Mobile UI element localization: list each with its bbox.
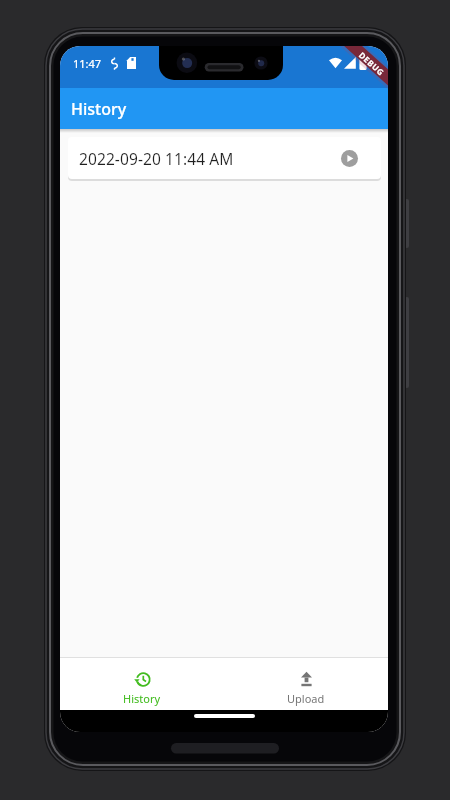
button[interactable]: 2022-09-20 11:44 AM [68, 137, 381, 179]
button[interactable]: Upload [224, 658, 388, 710]
staticText: Upload [287, 691, 325, 706]
staticText: History [71, 98, 127, 120]
staticText: 2022-09-20 11:44 AM [79, 148, 234, 169]
staticText: History [123, 691, 161, 706]
button[interactable]: History [60, 658, 224, 710]
staticText: DEBUG [357, 49, 387, 78]
button[interactable] [341, 150, 358, 167]
staticText: 11:47 [73, 56, 102, 71]
